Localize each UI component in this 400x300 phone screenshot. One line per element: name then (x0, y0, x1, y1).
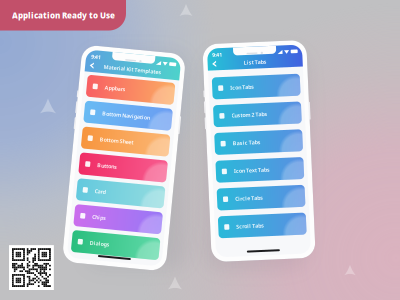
button[interactable]: Dialogs (80, 234, 168, 256)
button[interactable]: Custom 2 Tabs (215, 103, 303, 125)
staticText: Custom 2 Tabs (233, 111, 269, 118)
staticText: Buttons (98, 164, 118, 171)
staticText: Basic Tabs (233, 139, 261, 146)
staticText: List Tabs (247, 58, 270, 66)
button[interactable]: Scroll Tabs (215, 214, 303, 236)
staticText: Icon Tabs (233, 83, 257, 90)
staticText: Application Ready to Use (12, 10, 115, 21)
staticText: 9:41 (81, 56, 91, 64)
staticText: 9:41 (216, 49, 226, 57)
staticText: Dialogs (98, 242, 118, 249)
button[interactable]: Bottom Sheet (80, 130, 168, 152)
staticText: Card (98, 190, 109, 197)
button[interactable]: Basic Tabs (215, 131, 303, 153)
button[interactable]: Back (76, 63, 89, 74)
button[interactable]: Buttons (80, 156, 168, 178)
staticText: Icon Text Tabs (233, 166, 269, 173)
staticText: Circle Tabs (233, 194, 261, 201)
staticText: Scroll Tabs (233, 222, 261, 229)
staticText: Chips (98, 216, 112, 223)
staticText: Bottom Sheet (98, 138, 132, 145)
button[interactable]: Chips (80, 208, 168, 230)
staticText: Appbars (98, 86, 119, 93)
button[interactable]: Back (211, 56, 224, 67)
button[interactable]: Icon Text Tabs (215, 159, 303, 181)
button[interactable]: Appbars (80, 78, 168, 100)
staticText: Bottom Navigation (98, 112, 146, 119)
staticText: Material Kit Templates (95, 65, 153, 73)
button[interactable]: Bottom Navigation (80, 104, 168, 126)
button[interactable]: Card (80, 182, 168, 204)
button[interactable]: Icon Tabs (215, 75, 303, 97)
button[interactable]: Circle Tabs (215, 187, 303, 209)
